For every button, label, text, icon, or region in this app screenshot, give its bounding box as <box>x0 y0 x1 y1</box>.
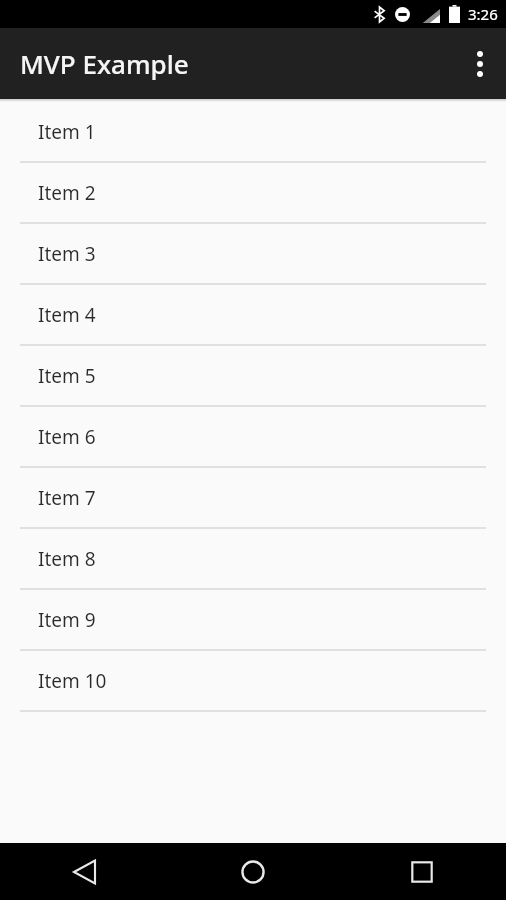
staticText: Item 2 <box>38 180 96 206</box>
button[interactable]: Item 8 <box>0 529 506 590</box>
button[interactable]: Item 7 <box>0 468 506 529</box>
button[interactable]: Item 2 <box>0 163 506 224</box>
button[interactable]: Home <box>168 843 337 900</box>
staticText: MVP Example <box>20 46 189 81</box>
button[interactable]: Item 10 <box>0 651 506 712</box>
staticText: 3:26 <box>468 4 498 24</box>
button[interactable]: Item 3 <box>0 224 506 285</box>
button[interactable]: Item 1 <box>0 102 506 163</box>
staticText: Item 9 <box>38 607 96 633</box>
button[interactable]: Item 6 <box>0 407 506 468</box>
button[interactable]: Item 5 <box>0 346 506 407</box>
staticText: Item 3 <box>38 241 96 267</box>
button[interactable]: Item 9 <box>0 590 506 651</box>
staticText: Item 10 <box>38 668 107 694</box>
staticText: Item 4 <box>38 302 96 328</box>
staticText: Item 5 <box>38 363 96 389</box>
button[interactable]: Recents <box>337 843 506 900</box>
staticText: Item 1 <box>38 119 96 145</box>
button[interactable]: Item 4 <box>0 285 506 346</box>
staticText: Item 8 <box>38 546 96 572</box>
button[interactable]: More options <box>454 28 506 99</box>
staticText: Item 6 <box>38 424 96 450</box>
button[interactable]: Back <box>0 843 168 900</box>
staticText: Item 7 <box>38 485 96 511</box>
